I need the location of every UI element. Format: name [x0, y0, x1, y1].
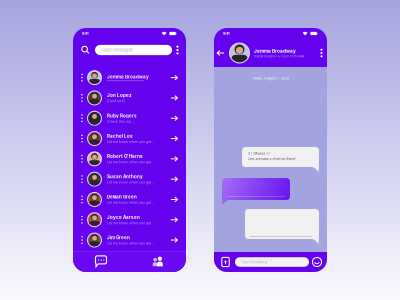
button[interactable]: Joyce Aarsen [73, 210, 186, 230]
staticText: Let me know when you get... [107, 241, 154, 245]
staticText: 9:41 [223, 31, 230, 36]
button[interactable]: Delilah Green [73, 189, 186, 210]
button[interactable]: Type Something [235, 257, 309, 267]
staticText: Robert O'Harris [107, 154, 143, 159]
staticText: Susan Anthony [107, 174, 143, 179]
staticText: Jemma Broadway [254, 48, 296, 54]
button[interactable]: Jim Green [73, 230, 186, 250]
staticText: Let me know when you get... [107, 200, 154, 205]
button[interactable]: Menu [172, 44, 183, 55]
button[interactable]: Emoji [311, 256, 323, 268]
button[interactable]: Ruby Rogers [73, 108, 186, 128]
button[interactable]: Contacts [129, 251, 186, 272]
staticText: Good luck! [107, 99, 125, 103]
staticText: Ruby Rogers [107, 113, 137, 118]
staticText: Let me know when you get... [107, 160, 154, 164]
button[interactable]: Messages [73, 251, 129, 272]
staticText: Let me know when you get... [107, 140, 154, 144]
staticText: Type Something [241, 260, 267, 264]
button[interactable]: Search [79, 43, 92, 56]
button[interactable]: Rachel Lee [73, 128, 186, 149]
staticText: Delilah Green [107, 194, 137, 200]
button[interactable]: Robert O'Harris [73, 149, 186, 169]
staticText: 9:41 [82, 31, 89, 36]
staticText: Jemma Broadway [107, 74, 149, 80]
button[interactable]: Attach file [219, 255, 232, 268]
staticText: Today, August 1, 2020 [252, 76, 289, 80]
button[interactable]: Susan Anthony [73, 169, 186, 189]
staticText: Let me know when you get... [107, 221, 154, 225]
staticText: Jim Green [107, 235, 130, 240]
staticText: OT Whales ^_^ [247, 151, 270, 156]
staticText: Check this out ... [107, 119, 135, 123]
staticText: Joyce Aarsen [107, 214, 140, 220]
staticText: Jon Lopez [107, 93, 132, 98]
button[interactable]: Search Messages [95, 45, 172, 55]
staticText: Rachel Lee [107, 133, 133, 139]
staticText: Search Messages [101, 47, 133, 52]
button[interactable]: Back [214, 46, 227, 59]
button[interactable]: Menu [316, 47, 327, 58]
staticText: Let me know when you get... [107, 180, 154, 184]
staticText: Lets animate a short on them! [247, 157, 295, 161]
button[interactable]: Jon Lopez [73, 88, 186, 108]
button[interactable]: Jemma Broadway [73, 67, 186, 88]
staticText: Digital Designer & UI/UX Enthusiast [254, 55, 304, 58]
